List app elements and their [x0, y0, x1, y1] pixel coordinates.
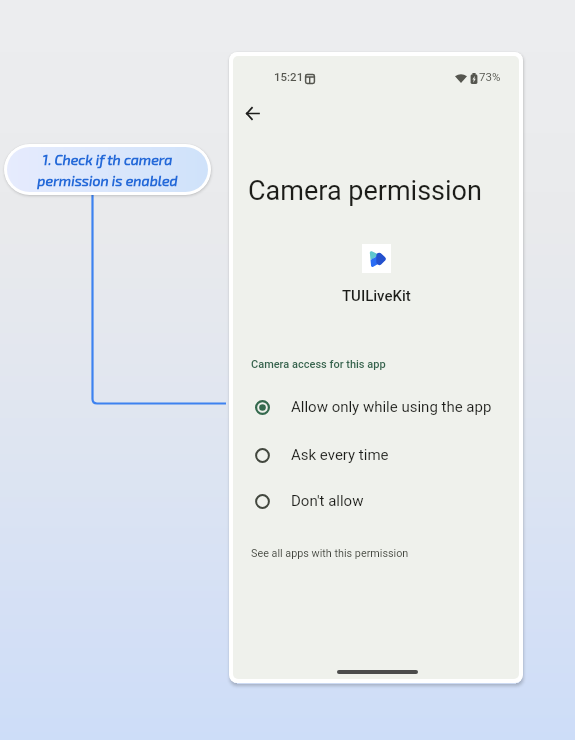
- staticText: 73%: [479, 70, 501, 83]
- staticText: Don't allow: [291, 492, 364, 510]
- staticText: Camera access for this app: [251, 358, 386, 371]
- staticText: Camera permission: [248, 175, 482, 207]
- button[interactable]: Allow only while using the app: [233, 384, 519, 430]
- staticText: Allow only while using the app: [291, 398, 492, 416]
- button[interactable]: See all apps with this permission: [251, 547, 409, 560]
- button[interactable]: Ask every time: [233, 432, 519, 478]
- staticText: TUILiveKit: [342, 287, 411, 305]
- button[interactable]: Don't allow: [233, 478, 519, 524]
- button[interactable]: Back: [238, 99, 267, 128]
- button[interactable]: 1. Check if th camera permission is enab…: [7, 147, 208, 192]
- staticText: 15:21: [274, 70, 304, 83]
- staticText: 1. Check if th camera permission is enab…: [37, 151, 178, 189]
- staticText: Ask every time: [291, 446, 389, 464]
